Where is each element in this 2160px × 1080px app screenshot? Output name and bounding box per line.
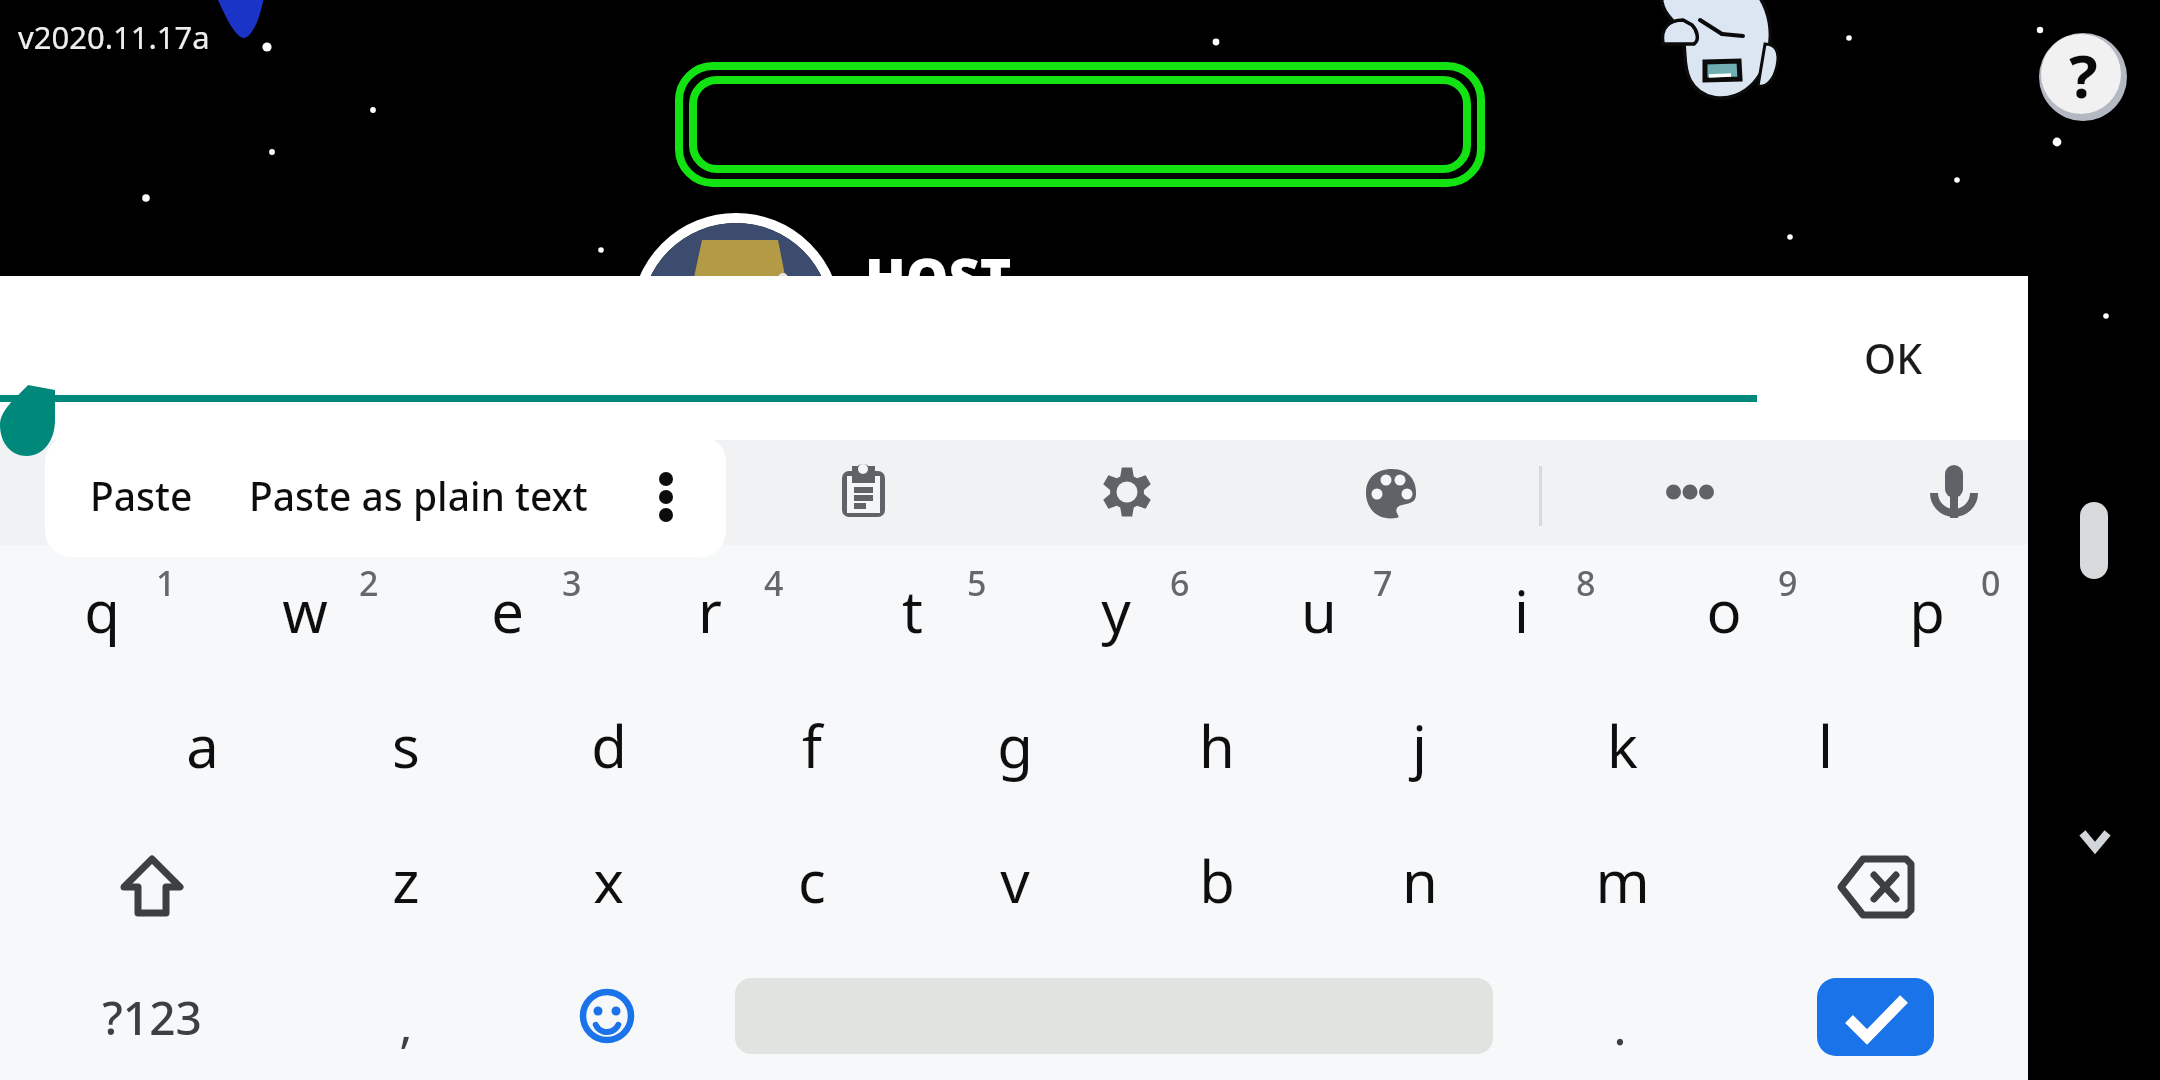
button[interactable]: , xyxy=(330,959,482,1080)
staticText: 3 xyxy=(562,560,582,606)
staticText: e xyxy=(491,571,524,650)
staticText: x xyxy=(593,841,624,920)
button[interactable]: e xyxy=(406,535,609,665)
button[interactable]: u xyxy=(1217,535,1420,665)
button[interactable]: Shift xyxy=(0,822,304,952)
button[interactable]: v xyxy=(913,815,1116,945)
staticText: s xyxy=(392,706,420,785)
staticText: w xyxy=(282,571,328,650)
button[interactable]: t xyxy=(811,535,1014,665)
button[interactable]: h xyxy=(1115,680,1318,810)
staticText: h xyxy=(1199,706,1235,785)
button[interactable]: l xyxy=(1724,680,1927,810)
staticText: j xyxy=(1412,706,1427,785)
staticText: k xyxy=(1607,706,1638,785)
staticText: v xyxy=(1000,841,1030,920)
staticText: 7 xyxy=(1373,560,1393,606)
button[interactable]: f xyxy=(710,680,913,810)
staticText: i xyxy=(1514,571,1529,650)
staticText: l xyxy=(1818,706,1833,785)
staticText: , xyxy=(399,990,413,1058)
button[interactable]: n xyxy=(1318,815,1521,945)
button[interactable]: m xyxy=(1521,815,1724,945)
staticText: b xyxy=(1199,841,1235,920)
staticText: 6 xyxy=(1170,560,1190,606)
button[interactable]: k xyxy=(1521,680,1724,810)
staticText: 4 xyxy=(764,560,784,606)
staticText: o xyxy=(1706,571,1742,650)
button[interactable]: a xyxy=(101,680,304,810)
staticText: r xyxy=(698,571,722,650)
button[interactable]: z xyxy=(304,815,507,945)
button[interactable]: Paste as plain text xyxy=(249,469,588,522)
staticText: t xyxy=(902,571,923,650)
staticText: a xyxy=(186,706,219,785)
button[interactable]: ?123 xyxy=(0,952,304,1080)
staticText: q xyxy=(84,571,120,650)
button[interactable]: Clipboard xyxy=(809,440,917,545)
button[interactable]: q xyxy=(0,535,203,665)
staticText: 1 xyxy=(156,560,176,606)
button[interactable]: w xyxy=(203,535,406,665)
button[interactable]: Hide keyboard xyxy=(2066,815,2124,867)
button[interactable]: i xyxy=(1420,535,1623,665)
button[interactable]: p xyxy=(1825,535,2028,665)
button[interactable]: g xyxy=(913,680,1116,810)
button[interactable]: . xyxy=(1530,961,1710,1080)
staticText: HOST xyxy=(865,240,1012,312)
staticText: . xyxy=(1613,992,1627,1060)
button[interactable]: Settings xyxy=(1073,440,1181,545)
button[interactable]: Voice input xyxy=(1900,440,2008,545)
button[interactable]: b xyxy=(1115,815,1318,945)
button[interactable]: Theme xyxy=(1337,440,1445,545)
button[interactable]: d xyxy=(507,680,710,810)
button[interactable]: Backspace xyxy=(1724,822,2028,952)
button[interactable]: c xyxy=(710,815,913,945)
button[interactable]: Help xyxy=(2039,33,2129,123)
staticText: p xyxy=(1909,571,1945,650)
staticText: ?123 xyxy=(102,986,202,1049)
staticText: c xyxy=(798,841,826,920)
staticText: g xyxy=(997,706,1033,785)
button[interactable]: Emoji xyxy=(527,951,687,1080)
button[interactable]: s xyxy=(304,680,507,810)
button[interactable]: j xyxy=(1318,680,1521,810)
button[interactable]: More xyxy=(1636,440,1744,545)
button[interactable]: OK xyxy=(1864,330,1923,386)
staticText: 0 xyxy=(1981,560,2001,606)
button[interactable]: y xyxy=(1014,535,1217,665)
staticText: ? xyxy=(2069,34,2098,116)
staticText: d xyxy=(591,706,627,785)
staticText: z xyxy=(392,841,420,920)
staticText: u xyxy=(1301,571,1337,650)
button[interactable]: Paste xyxy=(90,469,193,522)
button[interactable]: Enter xyxy=(1817,978,1934,1056)
button[interactable]: x xyxy=(507,815,710,945)
button[interactable]: o xyxy=(1622,535,1825,665)
staticText: 5 xyxy=(967,560,987,606)
staticText: m xyxy=(1595,841,1650,920)
staticText: 2 xyxy=(359,560,379,606)
button[interactable]: r xyxy=(608,535,811,665)
staticText: 9 xyxy=(1778,560,1798,606)
staticText: n xyxy=(1402,841,1438,920)
staticText: f xyxy=(802,706,822,785)
staticText: 8 xyxy=(1576,560,1596,606)
staticText: v2020.11.17a xyxy=(18,16,210,58)
button[interactable]: More options xyxy=(636,467,696,527)
staticText: y xyxy=(1101,571,1131,650)
